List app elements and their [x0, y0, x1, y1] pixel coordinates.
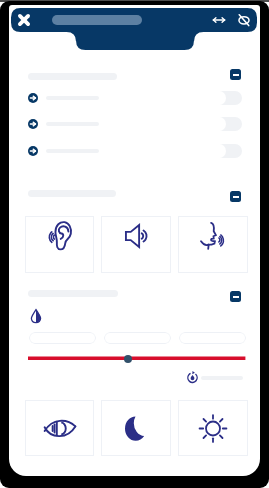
- button[interactable]: Contrast: [27, 307, 44, 324]
- button[interactable]: EyeContrast: [25, 400, 94, 456]
- button[interactable]: Brightness slider: [24, 352, 250, 366]
- button[interactable]: [29, 332, 96, 344]
- button[interactable]: Collapse section: [230, 291, 241, 302]
- button[interactable]: Moon: [101, 400, 171, 456]
- button[interactable]: Close: [12, 8, 36, 32]
- button[interactable]: [104, 332, 171, 344]
- button[interactable]: Collapse section: [230, 191, 241, 202]
- button[interactable]: [24, 115, 244, 133]
- button[interactable]: Hide: [232, 8, 256, 32]
- button[interactable]: Ear: [25, 216, 94, 273]
- button[interactable]: [179, 332, 246, 344]
- button[interactable]: Collapse section: [230, 69, 241, 80]
- button[interactable]: Speaking: [178, 216, 248, 273]
- button[interactable]: Reset: [185, 369, 200, 384]
- button[interactable]: Sun: [178, 400, 248, 456]
- button[interactable]: [24, 89, 244, 107]
- button[interactable]: Resize: [207, 8, 231, 32]
- button[interactable]: Speaker: [101, 216, 171, 273]
- button[interactable]: [24, 142, 244, 160]
